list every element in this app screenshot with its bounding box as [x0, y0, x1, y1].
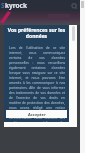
staticText: Lors de l'utilisation de ce site interne…: [9, 45, 65, 122]
staticText: kyrock: [5, 1, 27, 10]
staticText: S: [1, 1, 5, 10]
staticText: Vos préférences sur les données: [6, 27, 67, 40]
staticText: Accepter: [28, 112, 46, 117]
button[interactable]: Search: [69, 1, 79, 11]
button[interactable]: S: [0, 1, 27, 10]
button[interactable]: Accepter: [6, 110, 67, 118]
